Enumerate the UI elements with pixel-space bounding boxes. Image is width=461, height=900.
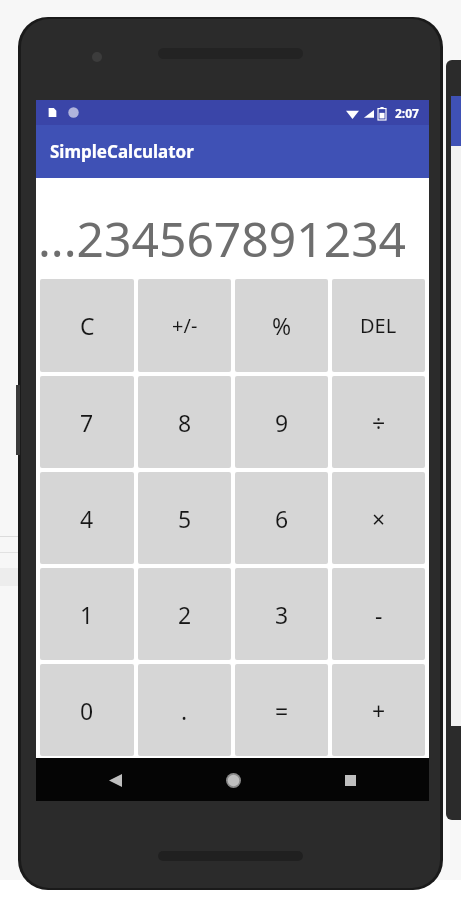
staticText: 0: [80, 695, 94, 726]
button[interactable]: C: [40, 279, 134, 372]
staticText: ×: [372, 503, 386, 534]
button[interactable]: Back: [98, 763, 132, 797]
button[interactable]: 6: [235, 472, 328, 564]
staticText: 7: [80, 407, 94, 438]
button[interactable]: 8: [138, 376, 231, 468]
staticText: 6: [275, 503, 289, 534]
button[interactable]: -: [332, 568, 425, 660]
button[interactable]: SimpleCalculator: [36, 125, 429, 178]
staticText: 9: [275, 407, 289, 438]
button[interactable]: ×: [332, 472, 425, 564]
staticText: 5: [178, 503, 192, 534]
staticText: 1: [80, 599, 94, 630]
button[interactable]: Recent apps: [333, 763, 367, 797]
staticText: -: [375, 599, 383, 630]
staticText: 4: [80, 503, 94, 534]
button[interactable]: +/-: [138, 279, 231, 372]
staticText: 8: [178, 407, 192, 438]
staticText: +: [372, 695, 386, 726]
button[interactable]: %: [235, 279, 328, 372]
button[interactable]: 3: [235, 568, 328, 660]
staticText: ÷: [372, 407, 386, 438]
staticText: ...23456789123456: [38, 206, 429, 271]
staticText: SimpleCalculator: [50, 140, 194, 163]
button[interactable]: 1: [40, 568, 134, 660]
button[interactable]: 9: [235, 376, 328, 468]
staticText: +/-: [172, 312, 198, 339]
staticText: .: [181, 695, 188, 726]
button[interactable]: 4: [40, 472, 134, 564]
button[interactable]: 5: [138, 472, 231, 564]
button[interactable]: 2: [138, 568, 231, 660]
staticText: 2: [178, 599, 192, 630]
staticText: %: [272, 310, 292, 341]
staticText: C: [80, 310, 95, 341]
staticText: =: [275, 695, 289, 726]
button[interactable]: ÷: [332, 376, 425, 468]
button[interactable]: =: [235, 664, 328, 756]
button[interactable]: DEL: [332, 279, 425, 372]
button[interactable]: .: [138, 664, 231, 756]
staticText: 3: [275, 599, 289, 630]
staticText: 2:07: [395, 105, 419, 121]
button[interactable]: +: [332, 664, 425, 756]
button[interactable]: Home: [216, 763, 250, 797]
button[interactable]: 7: [40, 376, 134, 468]
staticText: DEL: [360, 312, 397, 339]
button[interactable]: 0: [40, 664, 134, 756]
